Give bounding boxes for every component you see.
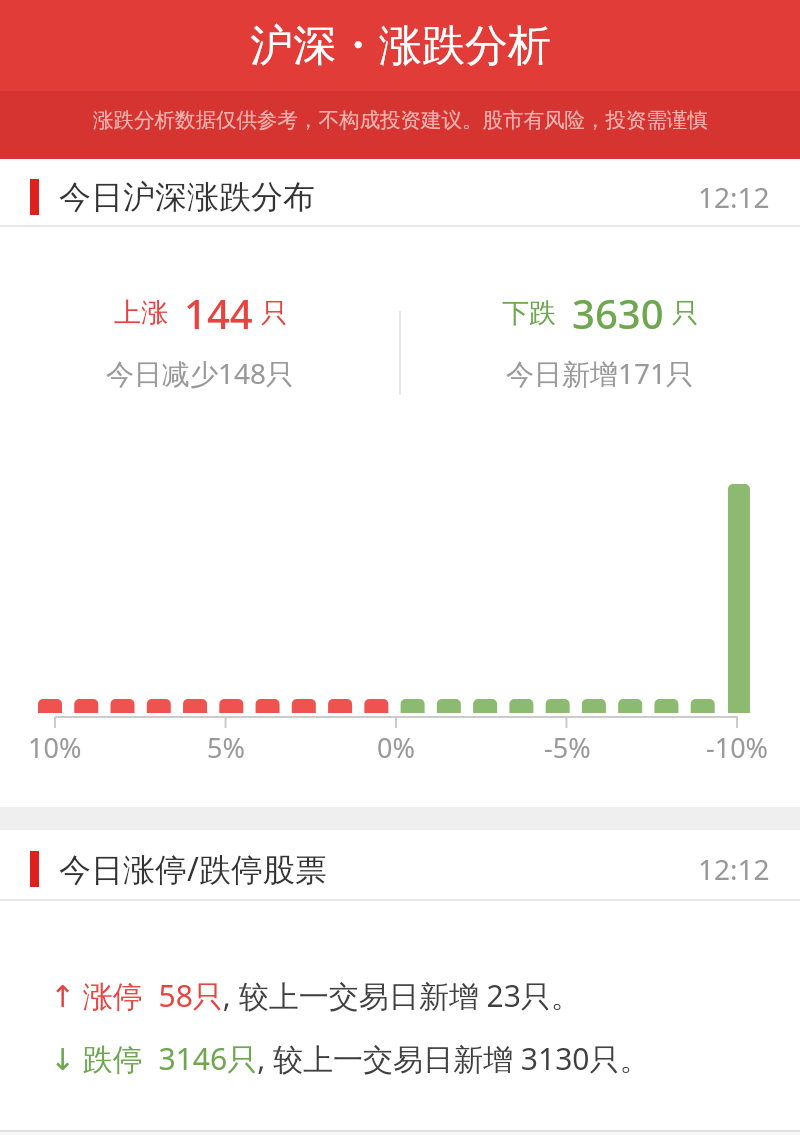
button[interactable]: 上涨	[106, 286, 295, 392]
button[interactable]: ↓ 跌停 3146只, 较上一交易日新增 3130只。	[50, 1038, 800, 1079]
button[interactable]: 今日沪深涨跌分布	[0, 168, 800, 225]
staticText: 今日新增171只	[506, 354, 695, 392]
staticText: 今日涨停/跌停股票	[59, 847, 327, 891]
staticText: ↓ 跌停 3146只, 较上一交易日新增 3130只。	[50, 1038, 650, 1079]
staticText: 12:12	[698, 178, 770, 216]
staticText: 10%	[28, 729, 82, 766]
button[interactable]: ↑ 涨停 58只, 较上一交易日新增 23只。	[50, 975, 800, 1016]
staticText: 今日沪深涨跌分布	[59, 177, 315, 217]
staticText: 今日减少148只	[106, 354, 295, 392]
staticText: -5%	[544, 729, 591, 766]
staticText: 3630	[572, 286, 664, 340]
staticText: 144	[184, 286, 253, 340]
staticText: 5%	[207, 729, 245, 766]
staticText: 只	[261, 296, 288, 330]
button[interactable]: 下跌	[502, 286, 699, 392]
staticText: 下跌	[502, 296, 556, 330]
button[interactable]: 今日涨停/跌停股票	[0, 839, 800, 899]
staticText: 沪深・涨跌分析	[250, 19, 551, 73]
staticText: 12:12	[698, 850, 770, 888]
staticText: 0%	[377, 729, 415, 766]
staticText: -10%	[706, 729, 769, 766]
staticText: 上涨	[114, 296, 168, 330]
staticText: 涨跌分析数据仅供参考，不构成投资建议。股市有风险，投资需谨慎	[93, 107, 708, 133]
staticText: ↑ 涨停 58只, 较上一交易日新增 23只。	[50, 975, 581, 1016]
staticText: 只	[672, 296, 699, 330]
